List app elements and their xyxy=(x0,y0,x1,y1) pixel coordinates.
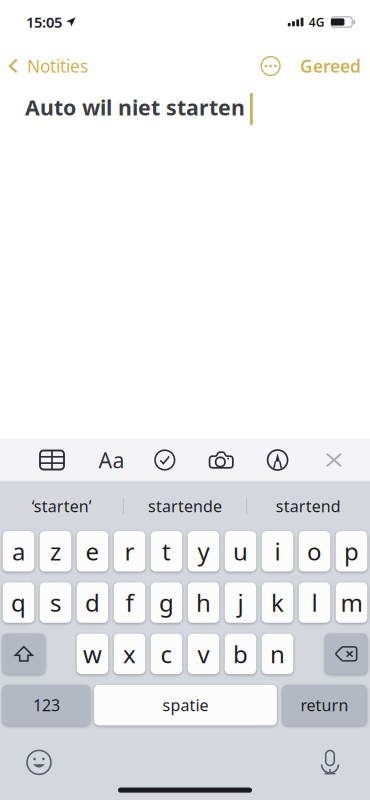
staticText: Notities xyxy=(27,54,88,77)
button[interactable]: t xyxy=(151,531,182,571)
button[interactable]: n xyxy=(262,634,293,674)
staticText: x xyxy=(123,638,136,670)
button[interactable]: j xyxy=(225,582,256,623)
staticText: r xyxy=(124,535,134,567)
button[interactable]: q xyxy=(3,582,34,623)
staticText: spatie xyxy=(162,694,208,716)
staticText: j xyxy=(237,587,243,618)
staticText: q xyxy=(11,587,26,618)
button[interactable]: More xyxy=(245,44,286,88)
button[interactable]: w xyxy=(77,634,108,674)
staticText: Auto wil niet starten xyxy=(25,93,245,121)
button[interactable]: startend xyxy=(247,481,369,531)
button[interactable]: Camera xyxy=(201,439,241,481)
staticText: g xyxy=(159,587,174,618)
button[interactable]: spatie xyxy=(94,685,277,725)
button[interactable]: ‘starten’ xyxy=(1,481,123,531)
staticText: e xyxy=(85,535,99,567)
staticText: a xyxy=(12,535,25,567)
staticText: 123 xyxy=(33,694,60,716)
button[interactable]: Checklist xyxy=(145,439,185,481)
button[interactable]: a xyxy=(3,531,34,571)
button[interactable]: o xyxy=(299,531,330,571)
button[interactable]: l xyxy=(299,582,330,623)
staticText: z xyxy=(50,535,61,567)
staticText: p xyxy=(344,535,359,567)
staticText: 4G xyxy=(309,14,325,30)
staticText: d xyxy=(85,587,100,618)
button[interactable]: i xyxy=(262,531,293,571)
staticText: n xyxy=(270,638,285,670)
button[interactable]: Close xyxy=(314,439,354,481)
staticText: u xyxy=(233,535,248,567)
button[interactable]: Delete xyxy=(325,634,367,674)
button[interactable]: c xyxy=(151,634,182,674)
staticText: 15:05 xyxy=(26,12,62,32)
button[interactable]: y xyxy=(188,531,219,571)
button[interactable]: r xyxy=(114,531,145,571)
staticText: c xyxy=(160,638,172,670)
button[interactable]: return xyxy=(282,685,367,725)
staticText: f xyxy=(125,587,133,618)
staticText: return xyxy=(301,694,349,716)
button[interactable]: k xyxy=(262,582,293,623)
staticText: w xyxy=(83,638,102,670)
staticText: y xyxy=(197,535,209,567)
staticText: l xyxy=(311,587,317,618)
button[interactable]: h xyxy=(188,582,219,623)
button[interactable]: Markup xyxy=(258,439,298,481)
button[interactable]: Table xyxy=(32,439,72,481)
staticText: s xyxy=(50,587,61,618)
staticText: k xyxy=(271,587,284,618)
staticText: Aa xyxy=(98,446,124,474)
button[interactable]: Dictation xyxy=(308,744,352,780)
button[interactable]: p xyxy=(336,531,367,571)
staticText: b xyxy=(233,638,248,670)
staticText: t xyxy=(162,535,171,567)
button[interactable]: b xyxy=(225,634,256,674)
button[interactable]: f xyxy=(114,582,145,623)
button[interactable]: startende xyxy=(124,481,246,531)
button[interactable]: e xyxy=(77,531,108,571)
button[interactable]: Notities xyxy=(0,44,100,88)
staticText: startende xyxy=(148,495,222,517)
staticText: v xyxy=(197,638,209,670)
staticText: h xyxy=(196,587,211,618)
staticText: startend xyxy=(276,495,341,517)
staticText: i xyxy=(274,535,280,567)
button[interactable]: Emoji xyxy=(17,744,61,780)
button[interactable]: m xyxy=(336,582,367,623)
button[interactable]: Gereed xyxy=(286,44,370,88)
button[interactable]: d xyxy=(77,582,108,623)
button[interactable]: u xyxy=(225,531,256,571)
staticText: m xyxy=(340,587,362,618)
button[interactable]: Aa xyxy=(88,439,128,481)
staticText: ‘starten’ xyxy=(32,495,92,517)
button[interactable]: z xyxy=(40,531,71,571)
button[interactable]: 123 xyxy=(3,685,90,725)
staticText: o xyxy=(307,535,322,567)
button[interactable]: Shift xyxy=(3,634,45,674)
button[interactable]: v xyxy=(188,634,219,674)
button[interactable]: x xyxy=(114,634,145,674)
button[interactable]: g xyxy=(151,582,182,623)
staticText: Gereed xyxy=(300,54,361,77)
button[interactable]: s xyxy=(40,582,71,623)
